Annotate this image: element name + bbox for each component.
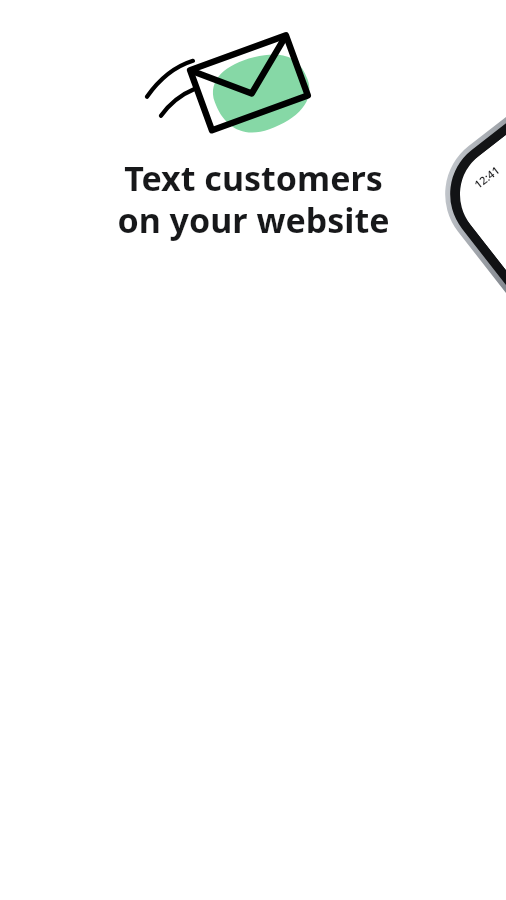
other: Phone showing a text message conversatio… [0,0,506,900]
staticText: Text customers on your website [117,155,390,243]
button[interactable]: Text customers on your website [0,155,506,243]
other: Envelope illustration [0,0,506,900]
